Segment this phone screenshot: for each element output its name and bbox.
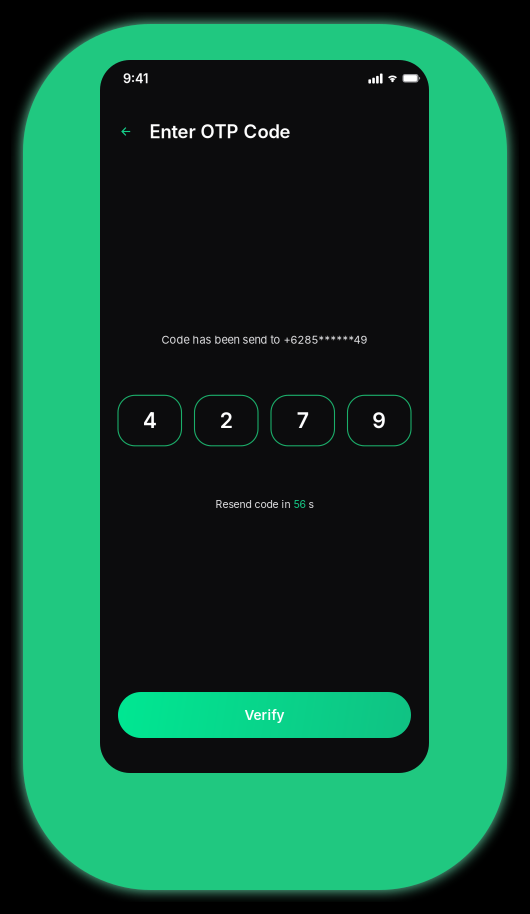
staticText: s: [308, 498, 313, 510]
button[interactable]: Verify: [118, 692, 411, 738]
staticText: 4: [143, 408, 157, 433]
button[interactable]: Back: [115, 121, 136, 142]
staticText: 7: [297, 408, 309, 433]
staticText: Resend code in: [215, 498, 290, 510]
staticText: Verify: [244, 707, 284, 723]
button[interactable]: 2: [194, 395, 258, 446]
staticText: 9: [372, 408, 386, 433]
staticText: 9:41: [123, 71, 148, 86]
button[interactable]: 9: [347, 395, 411, 446]
staticText: Code has been send to +6285******49: [161, 333, 367, 346]
button[interactable]: 4: [118, 395, 181, 446]
staticText: 2: [220, 408, 233, 433]
button[interactable]: 7: [271, 395, 334, 446]
staticText: Enter OTP Code: [149, 120, 290, 143]
staticText: 56: [293, 498, 305, 510]
